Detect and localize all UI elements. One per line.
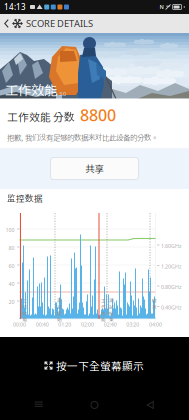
staticText: 0.80GHz <box>161 283 182 291</box>
staticText: 0.40GHz <box>161 304 182 311</box>
staticText: 80 <box>8 244 14 252</box>
staticText: 03:20 <box>126 321 139 328</box>
staticText: 試 <box>57 303 62 310</box>
staticText: 工作效能 分数 <box>7 109 75 124</box>
staticText: 04:00 <box>149 321 162 328</box>
button[interactable]: Back <box>133 396 167 414</box>
button[interactable]: Back <box>0 14 23 32</box>
staticText: 40 <box>8 280 14 288</box>
staticText: 束 <box>109 316 114 323</box>
staticText: 能 <box>22 316 27 323</box>
staticText: 結 <box>109 310 114 317</box>
staticText: 效 <box>101 310 106 317</box>
button[interactable]: Home <box>77 396 111 414</box>
staticText: 60 <box>8 262 14 270</box>
staticText: 作 <box>22 303 27 310</box>
staticText: 結 <box>152 297 157 304</box>
staticText: 試 <box>109 303 114 310</box>
button[interactable]: 共享 <box>50 157 138 179</box>
staticText: 01:20 <box>58 321 71 328</box>
staticText: 3.0 <box>59 90 66 97</box>
staticText: 02:40 <box>104 321 117 328</box>
staticText: 作 <box>101 303 106 310</box>
staticText: 共享 <box>85 162 103 175</box>
button[interactable]: Recents <box>22 396 56 414</box>
staticText: 開 <box>57 310 62 317</box>
staticText: 能 <box>101 316 106 323</box>
staticText: 00:40 <box>36 321 49 328</box>
staticText: 始 <box>57 316 62 323</box>
staticText: 监控数据 <box>7 192 43 204</box>
staticText: N <box>160 3 164 11</box>
staticText: 束 <box>152 303 157 310</box>
staticText: 工 <box>101 297 106 304</box>
staticText: 1.20GHz <box>161 263 182 270</box>
staticText: 工作效能 <box>5 80 57 99</box>
staticText: 8800 <box>80 104 116 126</box>
staticText: 14:13 <box>4 2 26 12</box>
staticText: SCORE DETAILS <box>26 17 93 30</box>
staticText: 測 <box>109 297 114 304</box>
staticText: 20 <box>8 298 14 306</box>
staticText: 效 <box>22 310 27 317</box>
staticText: 測 <box>57 297 62 304</box>
staticText: 02:00 <box>81 321 94 328</box>
staticText: 抱歉, 我们没有足够的数据来对比此设备的分数。 <box>7 132 158 142</box>
staticText: 1.60GHz <box>161 242 182 250</box>
button[interactable]: 按一下全螢幕顯示 <box>45 355 144 375</box>
staticText: 00:00 <box>13 321 26 328</box>
staticText: 按一下全螢幕顯示 <box>56 358 144 373</box>
staticText: 100 <box>5 226 14 234</box>
staticText: 工 <box>22 297 27 304</box>
